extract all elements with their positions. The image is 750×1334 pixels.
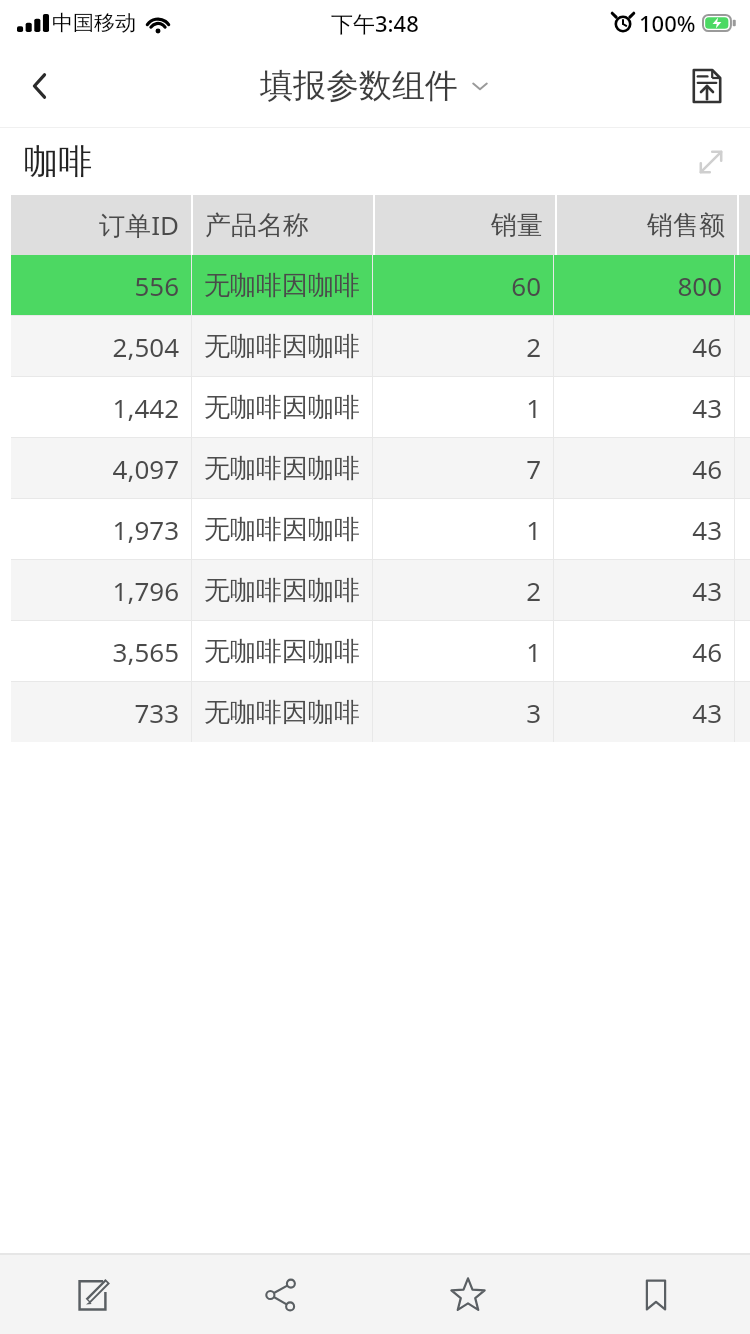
button[interactable]: Export (678, 57, 736, 115)
button[interactable]: Expand (686, 137, 736, 187)
button[interactable]: Favorite (374, 1255, 562, 1334)
button[interactable]: 2,504 (0, 316, 750, 376)
button[interactable]: 订单ID (11, 195, 191, 255)
staticText: 销售额 (647, 209, 725, 242)
staticText: 无咖啡因咖啡 (204, 574, 360, 607)
button[interactable]: 733 (0, 682, 750, 742)
staticText: 无咖啡因咖啡 (204, 269, 360, 302)
staticText: 无咖啡因咖啡 (204, 635, 360, 668)
staticText: 产品名称 (205, 209, 309, 242)
staticText: 2 (526, 329, 541, 364)
staticText: 46 (692, 451, 722, 486)
staticText: 1,973 (112, 512, 179, 547)
button[interactable]: Back (12, 58, 68, 114)
staticText: 订单ID (99, 207, 179, 243)
button[interactable]: 4,097 (0, 438, 750, 498)
button[interactable]: 1,442 (0, 377, 750, 437)
staticText: 60 (511, 268, 541, 303)
staticText: 中国移动 (52, 10, 136, 36)
staticText: 无咖啡因咖啡 (204, 696, 360, 729)
staticText: 1,796 (112, 573, 179, 608)
button[interactable]: Edit (0, 1255, 187, 1334)
button[interactable]: Bookmark (562, 1255, 750, 1334)
staticText: 733 (134, 695, 179, 730)
staticText: 1,442 (112, 390, 179, 425)
staticText: 下午3:48 (331, 8, 419, 38)
button[interactable]: 1,973 (0, 499, 750, 559)
button[interactable]: 556 (0, 255, 750, 315)
button[interactable]: Share (187, 1255, 374, 1334)
staticText: 46 (692, 329, 722, 364)
staticText: 43 (692, 512, 722, 547)
staticText: 43 (692, 573, 722, 608)
staticText: 2 (526, 573, 541, 608)
staticText: 填报参数组件 (260, 65, 458, 107)
staticText: 无咖啡因咖啡 (204, 452, 360, 485)
staticText: 800 (677, 268, 722, 303)
staticText: 3 (526, 695, 541, 730)
staticText: 43 (692, 695, 722, 730)
button[interactable]: 1,796 (0, 560, 750, 620)
staticText: 100% (639, 8, 696, 38)
staticText: 1 (526, 634, 541, 669)
staticText: 1 (526, 512, 541, 547)
staticText: 7 (526, 451, 541, 486)
button[interactable]: 3,565 (0, 621, 750, 681)
staticText: 销量 (491, 209, 543, 242)
staticText: 1 (526, 390, 541, 425)
staticText: 无咖啡因咖啡 (204, 330, 360, 363)
button[interactable]: 产品名称 (193, 195, 373, 255)
staticText: 无咖啡因咖啡 (204, 513, 360, 546)
staticText: 无咖啡因咖啡 (204, 391, 360, 424)
staticText: 2,504 (112, 329, 179, 364)
staticText: 556 (134, 268, 179, 303)
staticText: 43 (692, 390, 722, 425)
staticText: 咖啡 (24, 140, 92, 183)
button[interactable]: 销量 (375, 195, 555, 255)
staticText: 3,565 (112, 634, 179, 669)
staticText: 4,097 (112, 451, 179, 486)
button[interactable]: 销售额 (557, 195, 737, 255)
button[interactable]: 填报参数组件 (260, 65, 490, 107)
staticText: 46 (692, 634, 722, 669)
